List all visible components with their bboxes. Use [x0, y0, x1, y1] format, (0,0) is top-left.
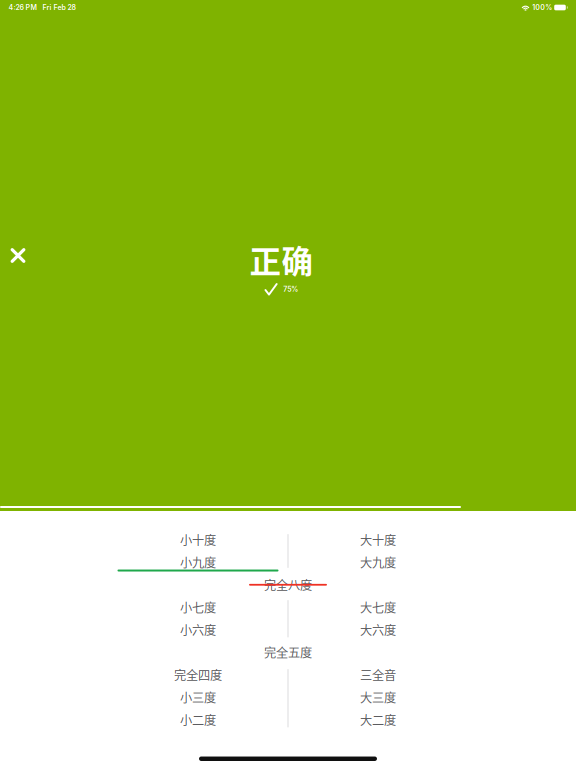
button[interactable]: 小十度 — [108, 528, 288, 551]
button[interactable]: 大九度 — [288, 551, 468, 573]
button[interactable]: 大二度 — [288, 708, 468, 731]
staticText: 大二度 — [360, 711, 396, 729]
staticText: 小七度 — [180, 598, 216, 616]
staticText: 小三度 — [180, 688, 216, 706]
staticText: 小十度 — [180, 531, 216, 549]
button[interactable]: 大七度 — [288, 596, 468, 618]
button[interactable]: 大十度 — [288, 528, 468, 551]
staticText: 100% — [532, 3, 552, 12]
staticText: 完全八度 — [264, 576, 312, 594]
button[interactable]: Close — [0, 234, 39, 276]
staticText: 正确 — [249, 237, 313, 282]
staticText: 大十度 — [360, 531, 396, 549]
button[interactable]: 小二度 — [108, 708, 288, 731]
staticText: Fri Feb 28 — [42, 3, 75, 12]
staticText: 完全四度 — [174, 666, 222, 684]
button[interactable]: 大六度 — [288, 618, 468, 641]
staticText: 三全音 — [360, 666, 396, 684]
staticText: 大九度 — [360, 553, 396, 571]
button[interactable]: 小六度 — [108, 618, 288, 641]
button[interactable]: 小九度 — [108, 551, 288, 573]
staticText: 小九度 — [180, 553, 216, 571]
staticText: 75% — [283, 285, 298, 294]
button[interactable]: 完全五度 — [264, 641, 312, 663]
button[interactable]: 小七度 — [108, 596, 288, 618]
button[interactable]: 完全四度 — [108, 663, 288, 686]
button[interactable]: 三全音 — [288, 663, 468, 686]
button[interactable]: 大三度 — [288, 686, 468, 708]
staticText: 完全五度 — [264, 643, 312, 661]
staticText: 大三度 — [360, 688, 396, 706]
staticText: 大六度 — [360, 621, 396, 639]
button[interactable]: 小三度 — [108, 686, 288, 708]
staticText: 大七度 — [360, 598, 396, 616]
staticText: 小二度 — [180, 711, 216, 729]
staticText: 4:26 PM — [8, 3, 36, 12]
staticText: 小六度 — [180, 621, 216, 639]
button[interactable]: 完全八度 — [249, 573, 327, 596]
